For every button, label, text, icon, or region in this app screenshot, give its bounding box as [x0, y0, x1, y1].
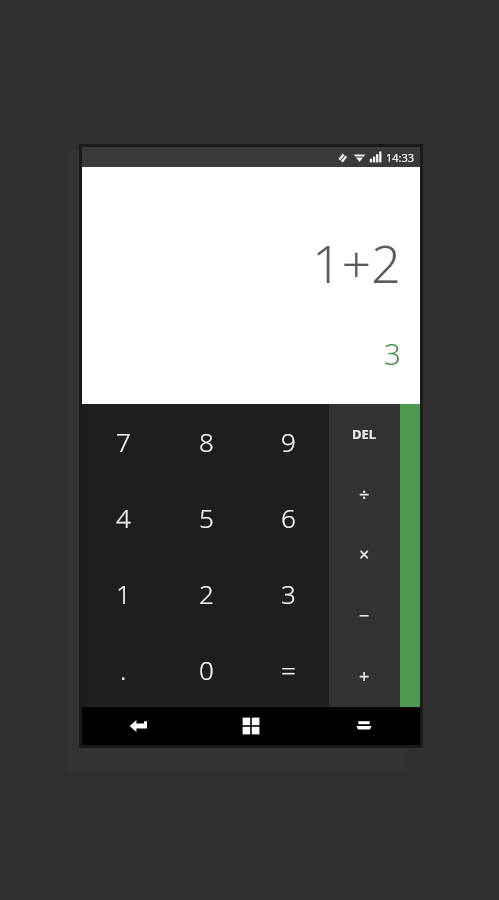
button[interactable]: 6 — [247, 479, 329, 555]
staticText: 2 — [199, 576, 214, 611]
staticText: 4 — [116, 500, 131, 535]
button[interactable]: 0 — [165, 631, 247, 707]
staticText: = — [281, 652, 296, 687]
button[interactable]: 9 — [247, 404, 329, 479]
staticText: 7 — [116, 424, 131, 459]
staticText: 6 — [281, 500, 296, 535]
staticText: 3 — [281, 576, 296, 611]
staticText: . — [120, 652, 127, 687]
staticText: 5 — [199, 500, 214, 535]
button[interactable]: Home — [194, 707, 307, 745]
button[interactable]: 2 — [165, 555, 247, 631]
button[interactable]: . — [82, 631, 165, 707]
button[interactable]: 1 — [82, 555, 165, 631]
staticText: + — [359, 664, 370, 689]
button[interactable]: + — [329, 646, 400, 707]
staticText: DEL — [352, 425, 377, 443]
button[interactable]: ÷ — [329, 464, 400, 524]
staticText: 1+2 — [311, 227, 401, 298]
staticText: − — [359, 603, 370, 628]
button[interactable]: − — [329, 585, 400, 646]
staticText: 1 — [116, 576, 131, 611]
staticText: 9 — [281, 424, 296, 459]
staticText: × — [359, 542, 370, 567]
button[interactable]: Recent apps — [307, 707, 420, 745]
button[interactable]: Back — [82, 707, 194, 745]
button[interactable]: DEL — [329, 404, 400, 464]
button[interactable]: × — [329, 524, 400, 585]
staticText: 0 — [199, 652, 214, 687]
button[interactable]: 5 — [165, 479, 247, 555]
staticText: 3 — [383, 333, 401, 374]
button[interactable]: 7 — [82, 404, 165, 479]
staticText: 8 — [199, 424, 214, 459]
staticText: 14:33 — [386, 150, 415, 165]
button[interactable]: 8 — [165, 404, 247, 479]
button[interactable]: 3 — [247, 555, 329, 631]
button[interactable]: 4 — [82, 479, 165, 555]
button[interactable]: = — [247, 631, 329, 707]
staticText: ÷ — [359, 482, 370, 507]
